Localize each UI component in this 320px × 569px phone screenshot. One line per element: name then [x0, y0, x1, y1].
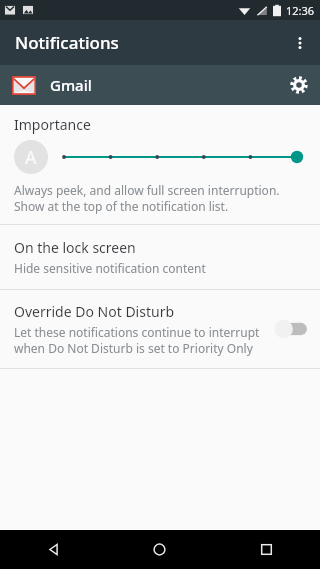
button[interactable]: App settings [278, 65, 320, 105]
staticText: Gmail [50, 75, 92, 95]
staticText: Importance [14, 115, 91, 134]
staticText: Notifications [15, 31, 119, 54]
button[interactable]: Importance level slider [62, 146, 306, 168]
button[interactable]: More options [280, 20, 320, 65]
staticText: Hide sensitive notification content [14, 260, 206, 276]
button[interactable]: Override Do Not Disturb [0, 290, 320, 368]
button[interactable]: Importance [0, 105, 320, 224]
button[interactable]: Back [0, 530, 106, 569]
staticText: Always peek, and allow full screen inter… [14, 182, 306, 214]
staticText: Override Do Not Disturb [14, 302, 175, 321]
button[interactable]: On the lock screen [0, 225, 320, 289]
button[interactable]: Home [106, 530, 213, 569]
staticText: Let these notifications continue to inte… [14, 324, 266, 356]
staticText: 12:36 [286, 3, 315, 18]
button[interactable]: Gmail [0, 65, 320, 105]
staticText: A [25, 145, 37, 170]
button[interactable]: Override Do Not Disturb toggle [274, 318, 308, 340]
staticText: On the lock screen [14, 238, 136, 257]
button[interactable]: Recent apps [213, 530, 320, 569]
